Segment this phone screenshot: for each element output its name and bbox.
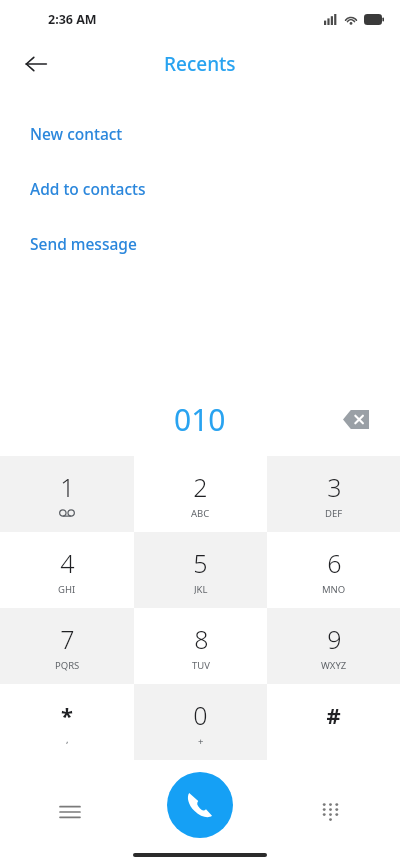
staticText: Send message: [30, 233, 137, 254]
staticText: 2:36 AM: [48, 11, 97, 28]
staticText: +: [198, 735, 204, 747]
button[interactable]: 0: [134, 684, 267, 760]
staticText: 2: [193, 470, 208, 504]
button[interactable]: 9: [267, 608, 400, 684]
staticText: #: [326, 700, 341, 730]
staticText: ABC: [191, 507, 210, 519]
staticText: DEF: [325, 507, 343, 519]
staticText: JKL: [194, 583, 208, 595]
button[interactable]: *: [0, 684, 134, 760]
staticText: 0: [193, 698, 208, 732]
staticText: MNO: [322, 583, 346, 595]
staticText: 3: [327, 470, 342, 504]
staticText: GHI: [58, 583, 76, 595]
button[interactable]: Add to contacts: [0, 161, 400, 216]
button[interactable]: 8: [134, 608, 267, 684]
button[interactable]: 6: [267, 532, 400, 608]
button[interactable]: Dialpad: [308, 790, 352, 834]
button[interactable]: 2: [134, 456, 267, 532]
staticText: Add to contacts: [30, 178, 146, 199]
staticText: New contact: [30, 123, 123, 144]
button[interactable]: Backspace: [336, 399, 376, 439]
staticText: TUV: [192, 659, 210, 671]
button[interactable]: New contact: [0, 106, 400, 161]
button[interactable]: 7: [0, 608, 134, 684]
button[interactable]: Send message: [0, 216, 400, 271]
staticText: 6: [327, 546, 342, 580]
staticText: PQRS: [55, 659, 80, 671]
staticText: ,: [66, 733, 69, 745]
staticText: WXYZ: [321, 659, 347, 671]
button[interactable]: 1: [0, 456, 134, 532]
button[interactable]: Call: [167, 772, 233, 838]
staticText: 5: [193, 546, 208, 580]
button[interactable]: 3: [267, 456, 400, 532]
button[interactable]: #: [267, 684, 400, 760]
button[interactable]: 4: [0, 532, 134, 608]
staticText: 4: [60, 546, 75, 580]
button[interactable]: Menu: [48, 790, 92, 834]
staticText: *: [61, 700, 73, 730]
staticText: 8: [194, 622, 209, 656]
button[interactable]: Back: [14, 42, 58, 86]
staticText: 9: [327, 622, 342, 656]
staticText: 010: [174, 399, 226, 440]
staticText: Recents: [164, 51, 236, 77]
button[interactable]: 5: [134, 532, 267, 608]
staticText: 1: [60, 470, 75, 504]
staticText: 7: [60, 622, 75, 656]
